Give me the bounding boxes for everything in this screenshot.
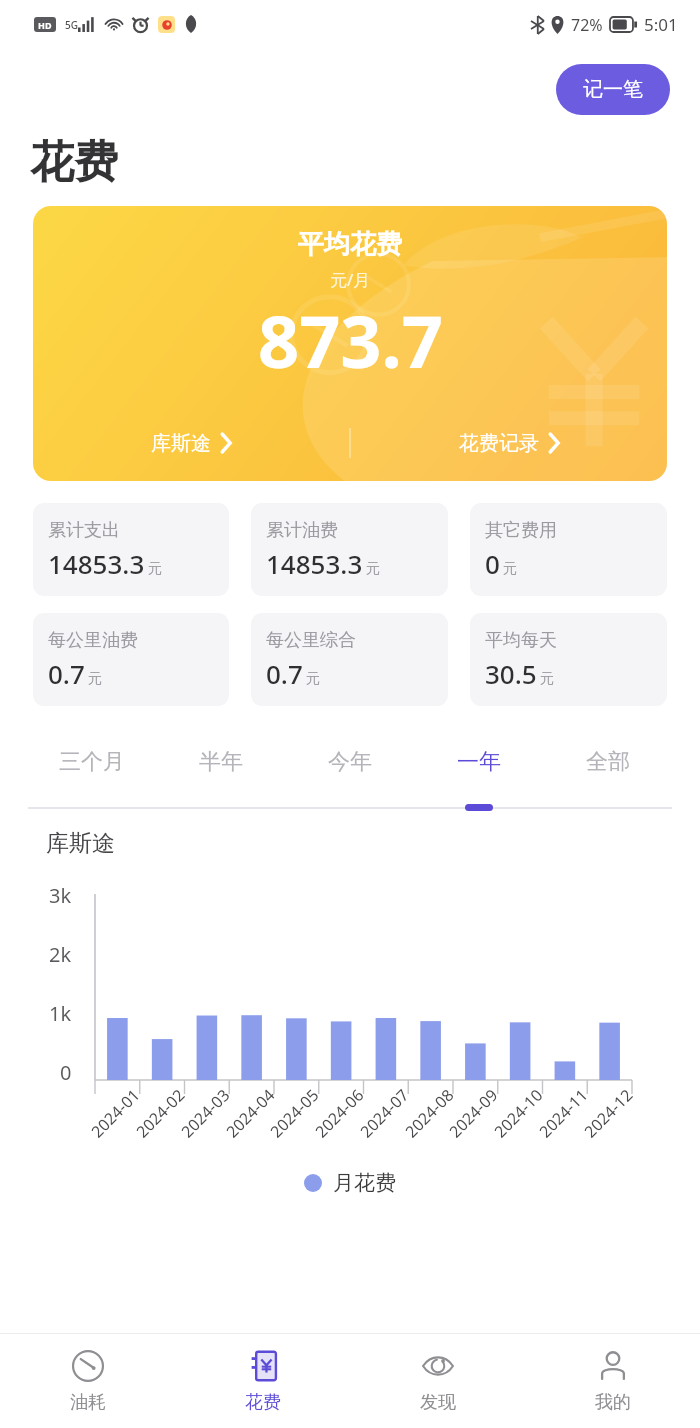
- staticText: 油耗: [70, 1391, 106, 1414]
- button[interactable]: 库斯途: [33, 405, 349, 481]
- button[interactable]: 平均花费: [33, 206, 667, 481]
- staticText: 30.5: [485, 656, 537, 691]
- staticText: 每公里油费: [48, 629, 138, 652]
- staticText: 元: [366, 560, 380, 578]
- other: 花费: [246, 1349, 280, 1383]
- button[interactable]: 一年: [414, 740, 543, 784]
- button[interactable]: 每公里综合: [251, 613, 448, 706]
- staticText: 发现: [420, 1391, 456, 1414]
- other: 油耗: [71, 1349, 105, 1383]
- button[interactable]: 平均每天: [470, 613, 667, 706]
- staticText: 平均花费: [298, 228, 402, 261]
- staticText: 0.7: [266, 656, 303, 691]
- staticText: 累计支出: [48, 519, 120, 542]
- staticText: 花费记录: [459, 431, 539, 456]
- staticText: 全部: [586, 748, 630, 776]
- staticText: 三个月: [59, 748, 125, 776]
- staticText: 2024-08: [400, 1084, 459, 1142]
- staticText: 873.7: [258, 291, 443, 389]
- staticText: 2024-03: [176, 1084, 235, 1142]
- staticText: 14853.3: [48, 546, 145, 581]
- staticText: 2k: [49, 941, 72, 968]
- staticText: 2024-11: [534, 1084, 593, 1142]
- staticText: 2024-09: [444, 1084, 503, 1142]
- staticText: 库斯途: [46, 829, 115, 858]
- staticText: 2024-02: [131, 1084, 190, 1142]
- staticText: 一年: [457, 748, 501, 776]
- staticText: 3k: [49, 882, 72, 909]
- staticText: 2024-10: [489, 1084, 548, 1142]
- staticText: 2024-05: [265, 1084, 324, 1142]
- staticText: 0: [60, 1059, 72, 1086]
- staticText: 花费: [30, 135, 118, 190]
- other: 我的: [596, 1349, 630, 1383]
- staticText: 0.7: [48, 656, 85, 691]
- staticText: 库斯途: [151, 431, 211, 456]
- staticText: 花费: [245, 1391, 281, 1414]
- staticText: 半年: [199, 748, 243, 776]
- staticText: 元: [148, 560, 162, 578]
- staticText: 元: [540, 670, 554, 688]
- other: 发现: [421, 1349, 455, 1383]
- button[interactable]: 花费记录: [351, 405, 667, 481]
- button[interactable]: 我的: [525, 1334, 700, 1428]
- staticText: 我的: [595, 1391, 631, 1414]
- staticText: 2024-07: [355, 1084, 414, 1142]
- staticText: 72%: [571, 14, 603, 36]
- button[interactable]: 累计油费: [251, 503, 448, 596]
- staticText: 平均每天: [485, 629, 557, 652]
- button[interactable]: 累计支出: [33, 503, 229, 596]
- staticText: 2024-01: [86, 1084, 145, 1142]
- staticText: 其它费用: [485, 519, 557, 542]
- button[interactable]: 发现: [350, 1334, 525, 1428]
- button[interactable]: 记一笔: [556, 64, 670, 115]
- staticText: 0: [485, 546, 500, 581]
- staticText: 元: [306, 670, 320, 688]
- button[interactable]: 其它费用: [470, 503, 667, 596]
- staticText: 5:01: [644, 13, 678, 36]
- button[interactable]: 半年: [156, 740, 285, 784]
- staticText: 每公里综合: [266, 629, 356, 652]
- staticText: 元: [88, 670, 102, 688]
- staticText: 元: [503, 560, 517, 578]
- button[interactable]: 油耗: [0, 1334, 175, 1428]
- staticText: 2024-04: [221, 1084, 280, 1142]
- staticText: 元/月: [330, 268, 371, 291]
- staticText: 14853.3: [266, 546, 363, 581]
- staticText: 5G: [65, 18, 78, 32]
- staticText: HD: [38, 19, 52, 31]
- button[interactable]: 全部: [543, 740, 672, 784]
- staticText: 2024-06: [310, 1084, 369, 1142]
- staticText: 记一笔: [583, 77, 643, 102]
- staticText: 1k: [49, 1000, 72, 1027]
- staticText: 月花费: [333, 1170, 396, 1196]
- staticText: 2024-12: [579, 1084, 638, 1142]
- staticText: 累计油费: [266, 519, 338, 542]
- staticText: 今年: [328, 748, 372, 776]
- button[interactable]: 三个月: [28, 740, 156, 784]
- button[interactable]: 花费: [175, 1334, 350, 1428]
- button[interactable]: 每公里油费: [33, 613, 229, 706]
- button[interactable]: 今年: [285, 740, 414, 784]
